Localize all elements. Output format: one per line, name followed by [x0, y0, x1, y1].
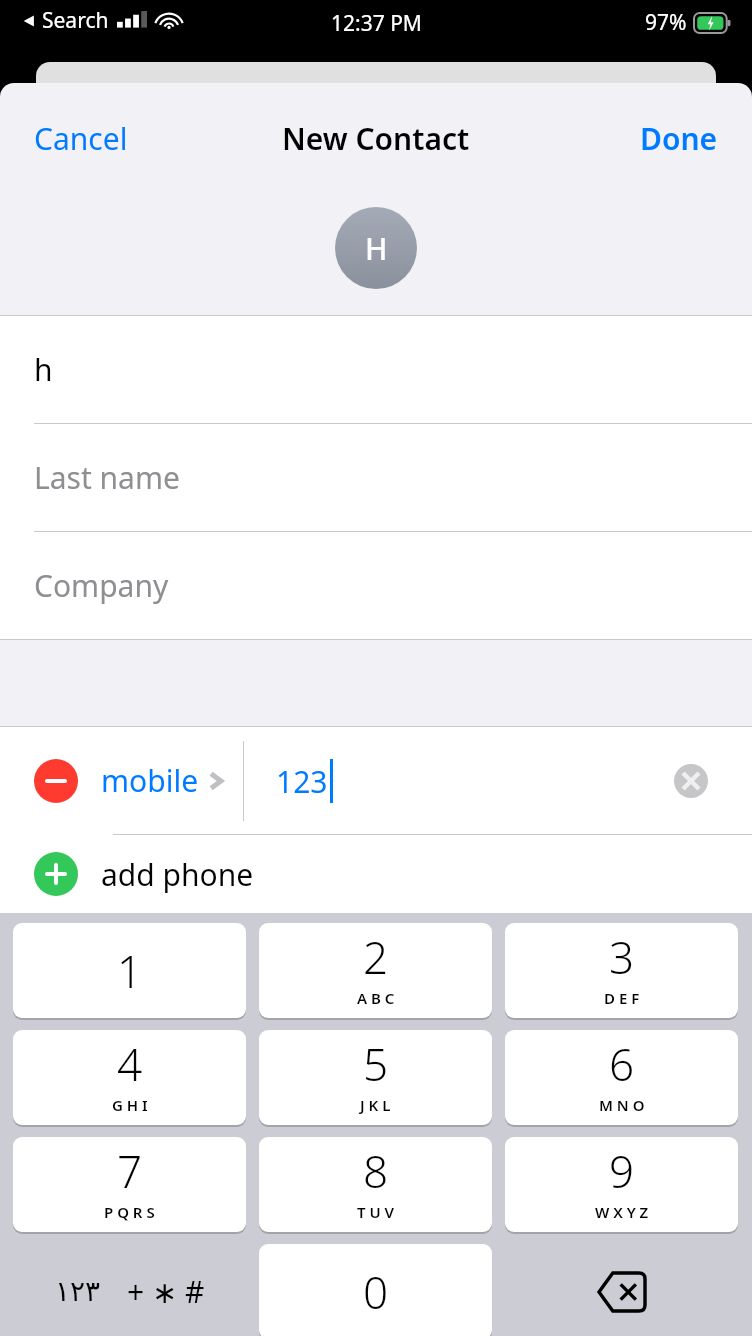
- staticText: h: [34, 349, 53, 390]
- button[interactable]: 3: [505, 923, 738, 1018]
- button[interactable]: 1: [13, 923, 246, 1018]
- button[interactable]: 6: [505, 1030, 738, 1125]
- staticText: P Q R S: [104, 1202, 155, 1222]
- button[interactable]: Remove phone: [34, 759, 78, 803]
- staticText: Search: [42, 6, 109, 35]
- button[interactable]: 4: [13, 1030, 246, 1125]
- staticText: 3: [609, 927, 635, 987]
- staticText: 1: [117, 941, 143, 1001]
- staticText: 8: [363, 1141, 389, 1201]
- staticText: New Contact: [282, 118, 470, 159]
- button[interactable]: ١٢٣: [13, 1244, 246, 1336]
- button[interactable]: 5: [259, 1030, 492, 1125]
- staticText: J K L: [360, 1095, 391, 1115]
- staticText: Company: [34, 565, 169, 606]
- staticText: 2: [363, 927, 389, 987]
- staticText: 9: [609, 1141, 635, 1201]
- staticText: W X Y Z: [595, 1202, 649, 1222]
- button[interactable]: Cancel: [0, 108, 162, 169]
- button[interactable]: 2: [259, 923, 492, 1018]
- button[interactable]: h: [0, 316, 752, 423]
- button[interactable]: Last name: [0, 424, 752, 531]
- button[interactable]: 123: [244, 727, 674, 834]
- button[interactable]: 7: [13, 1137, 246, 1232]
- staticText: 6: [609, 1034, 635, 1094]
- staticText: 123: [276, 761, 328, 802]
- staticText: A B C: [357, 988, 395, 1008]
- staticText: T U V: [357, 1202, 395, 1222]
- button[interactable]: 9: [505, 1137, 738, 1232]
- button[interactable]: Add photo: [335, 207, 417, 289]
- staticText: 97%: [645, 8, 687, 37]
- button[interactable]: 8: [259, 1137, 492, 1232]
- staticText: Cancel: [34, 118, 128, 159]
- staticText: 12:37 PM: [331, 9, 422, 38]
- staticText: 0: [363, 1262, 389, 1322]
- button[interactable]: 0: [259, 1244, 492, 1336]
- staticText: mobile: [101, 760, 199, 801]
- button[interactable]: add phone: [0, 835, 752, 913]
- button[interactable]: Clear text: [674, 764, 708, 798]
- button[interactable]: Backspace: [505, 1244, 738, 1336]
- staticText: + ∗ #: [127, 1271, 205, 1312]
- staticText: G H I: [112, 1095, 148, 1115]
- staticText: Last name: [34, 457, 180, 498]
- button[interactable]: mobile: [101, 760, 243, 801]
- staticText: M N O: [599, 1095, 645, 1115]
- staticText: 4: [117, 1034, 143, 1094]
- staticText: 5: [363, 1034, 389, 1094]
- staticText: D E F: [604, 988, 640, 1008]
- staticText: H: [365, 228, 388, 269]
- staticText: 7: [117, 1141, 143, 1201]
- staticText: ١٢٣: [55, 1275, 101, 1308]
- button[interactable]: Company: [0, 532, 752, 639]
- button[interactable]: Done: [606, 108, 752, 169]
- staticText: add phone: [101, 854, 254, 895]
- staticText: Done: [640, 118, 718, 159]
